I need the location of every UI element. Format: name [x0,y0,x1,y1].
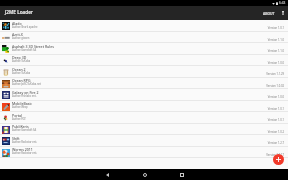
staticText: Asphalt 3 3D Street Rules [12,44,54,49]
button[interactable]: Recents [163,169,200,180]
staticText: ABOUT [263,11,275,16]
button[interactable]: Ocean RPG [0,78,288,89]
staticText: Version 1.1.0 [267,38,284,42]
button[interactable]: Add [273,154,284,165]
staticText: Version 1.0.1 [267,26,284,30]
staticText: Author:FGT [12,117,26,121]
staticText: Portal [12,113,23,118]
staticText: Worms 2011 [12,147,33,152]
staticText: Author:Fishlabs ent. [12,94,37,98]
button[interactable]: Shift [0,135,288,147]
staticText: J2ME Loader [5,9,33,15]
button[interactable]: Alado [0,20,288,32]
staticText: Ocean 2 [12,67,26,72]
staticText: Ocean RPG [12,78,31,83]
staticText: Author:TuKoba [12,59,31,63]
staticText: Galaxy on Fire 2 [12,90,39,95]
staticText: Author:JoiSCTuKoba.net [12,82,41,86]
button[interactable]: PubliKeris [0,124,288,135]
staticText: Author:Wrap [12,105,28,109]
staticText: Version 1.0.1 [267,107,284,111]
button[interactable]: MobileBasic [0,101,288,112]
staticText: Version 1.1.0 [267,49,284,53]
staticText: Shift [12,136,20,141]
button[interactable]: Ocean 2 [0,66,288,78]
staticText: Version 1.0.2 [267,130,284,134]
staticText: Version 1.0.1 [267,118,284,122]
button[interactable]: Portal [0,112,288,124]
staticText: Version 1.0.02 [266,84,284,88]
staticText: MobileBasic [12,101,33,106]
button[interactable]: Deep 3D [0,55,288,66]
staticText: Author:Gameloft SA [12,128,37,132]
staticText: 6:43 [279,1,286,5]
staticText: Version 1.0.17 [266,153,284,157]
button[interactable]: More options [277,6,288,20]
staticText: Version 1.0.0 [267,61,284,65]
button[interactable]: Back [89,169,126,180]
staticText: Author:TuKoba [12,71,31,75]
staticText: Azrit-X [12,32,23,37]
staticText: Version 1.0.0 [267,95,284,99]
staticText: Author:Rockstar ent. [12,151,38,155]
staticText: Author:Shark apache [12,25,38,29]
staticText: Version 1.1.29 [266,72,284,76]
staticText: Version 1.2.7 [267,141,284,145]
button[interactable]: Worms 2011 [0,147,288,158]
staticText: Author:Rockstar ent. [12,140,38,144]
button[interactable]: Asphalt 3 3D Street Rules [0,43,288,55]
staticText: Author:gtzxen [12,36,30,40]
button[interactable]: ABOUT [261,6,277,20]
staticText: Deep 3D [12,55,27,60]
button[interactable]: Home [126,169,163,180]
staticText: Author:Gameloft SA [12,48,37,52]
staticText: PubliKeris [12,124,29,129]
staticText: Alado [12,21,22,26]
button[interactable]: Galaxy on Fire 2 [0,89,288,101]
button[interactable]: Azrit-X [0,32,288,43]
